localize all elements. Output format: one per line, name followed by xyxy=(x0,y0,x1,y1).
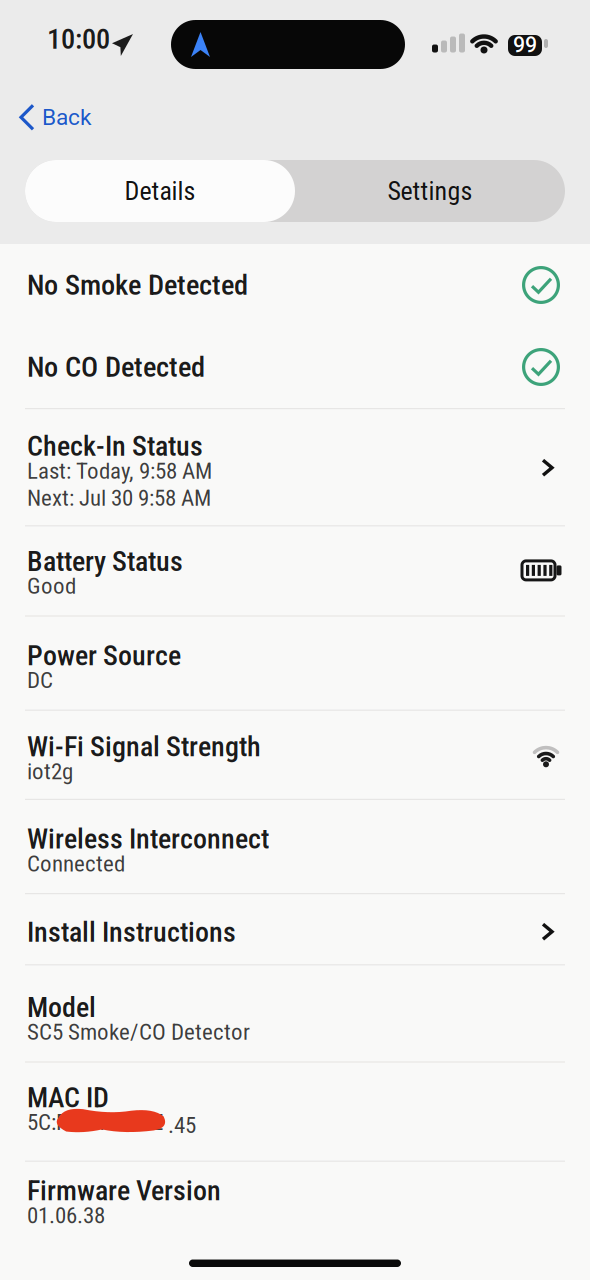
staticText: Model xyxy=(27,996,96,1018)
staticText: Settings xyxy=(387,179,472,203)
staticText: SC5 Smoke/CO Detector xyxy=(27,1021,250,1043)
staticText: Details xyxy=(124,179,195,203)
button[interactable]: Details xyxy=(25,160,295,222)
staticText: Wireless Interconnect xyxy=(27,828,269,850)
staticText: Install Instructions xyxy=(27,921,236,943)
staticText: Wi-Fi Signal Strength xyxy=(27,736,261,758)
staticText: Next: Jul 30 9:58 AM xyxy=(27,487,211,509)
staticText: iot2g xyxy=(27,761,73,782)
staticText: 99 xyxy=(513,32,537,57)
staticText: Last: Today, 9:58 AM xyxy=(27,460,212,481)
staticText: Power Source xyxy=(27,645,181,667)
staticText: Connected xyxy=(27,853,125,874)
staticText: Firmware Version xyxy=(27,1180,221,1202)
staticText: 01.06.38 xyxy=(27,1205,105,1226)
staticText: DC xyxy=(27,670,53,691)
staticText: 10:00 xyxy=(47,28,110,50)
staticText: No CO Detected xyxy=(27,356,205,378)
staticText: MAC ID xyxy=(27,1087,109,1109)
button[interactable]: Settings xyxy=(295,160,565,222)
button[interactable]: Install Instructions xyxy=(0,894,590,964)
staticText: 5C:F0:A1:B2:3E xyxy=(27,1112,163,1133)
staticText: Battery Status xyxy=(27,550,183,572)
staticText: .45 xyxy=(168,1115,196,1136)
staticText: Back xyxy=(42,104,91,131)
button[interactable]: Back xyxy=(21,104,91,131)
button[interactable]: Check-In Status xyxy=(0,409,590,525)
staticText: No Smoke Detected xyxy=(27,274,248,296)
staticText: Check-In Status xyxy=(27,435,203,457)
staticText: Good xyxy=(27,575,76,597)
